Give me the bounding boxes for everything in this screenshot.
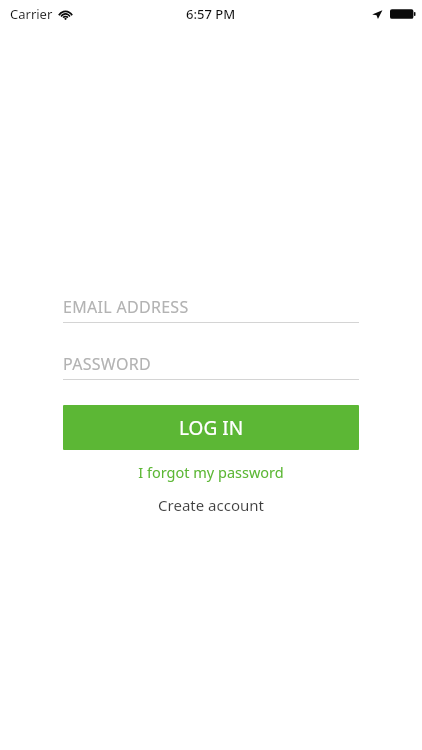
- button[interactable]: Create account: [0, 492, 422, 518]
- staticText: LOG IN: [179, 415, 244, 441]
- button[interactable]: LOG IN: [63, 405, 359, 450]
- staticText: Create account: [158, 495, 264, 515]
- staticText: Carrier: [10, 5, 53, 23]
- staticText: I forgot my password: [138, 462, 284, 482]
- staticText: 6:57 PM: [186, 5, 236, 23]
- button[interactable]: EMAIL ADDRESS: [63, 292, 359, 323]
- button[interactable]: I forgot my password: [0, 459, 422, 485]
- button[interactable]: PASSWORD: [63, 349, 359, 380]
- staticText: EMAIL ADDRESS: [63, 296, 189, 318]
- staticText: PASSWORD: [63, 353, 151, 375]
